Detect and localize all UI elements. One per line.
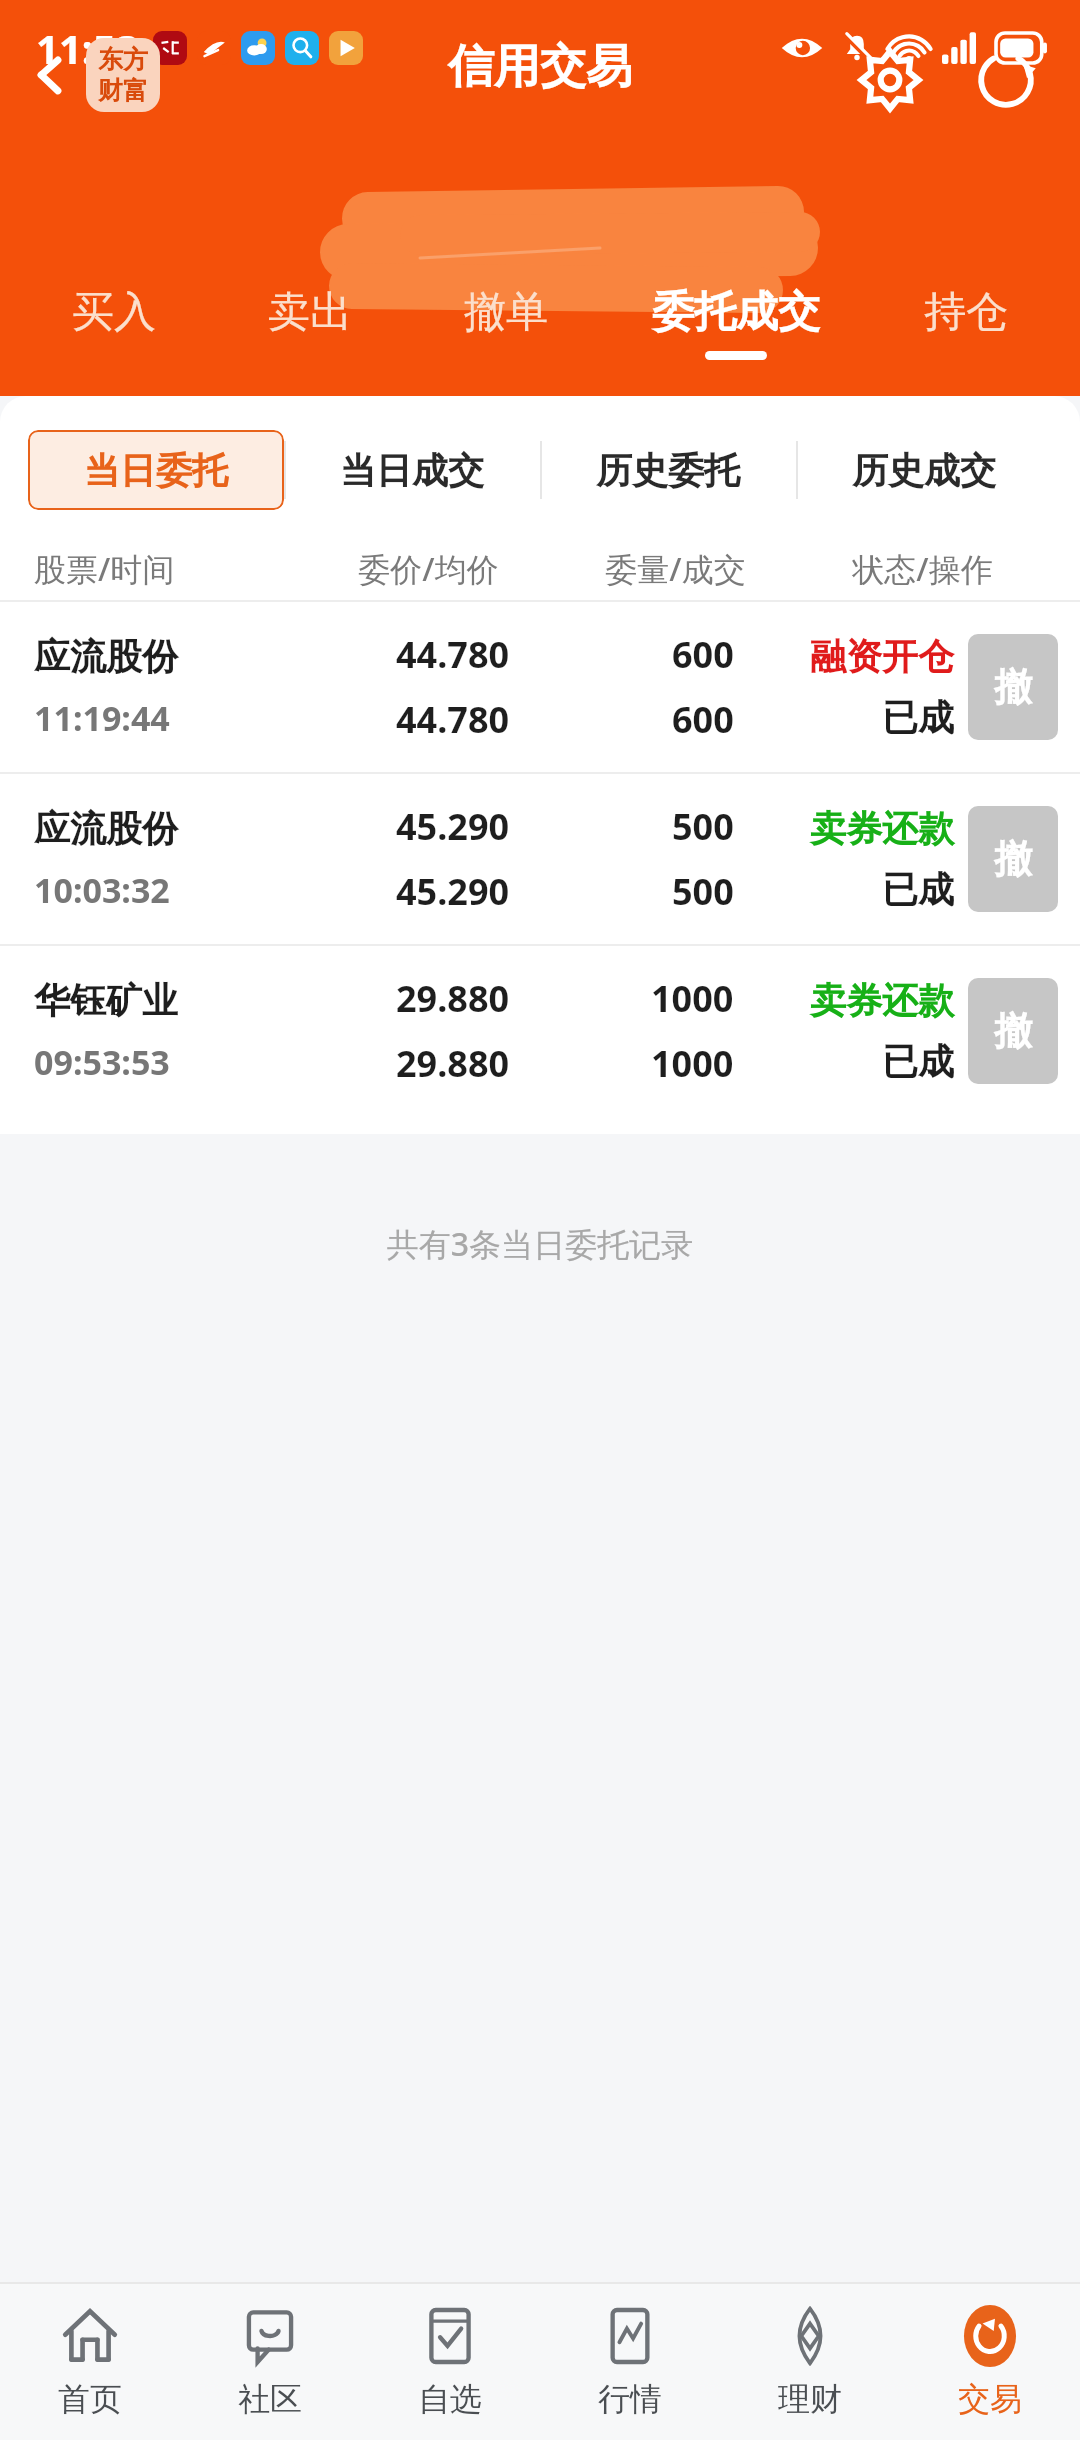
button[interactable]: 理财 (720, 2284, 900, 2440)
button[interactable]: 当日委托 (28, 430, 284, 510)
staticText: 500 (672, 802, 734, 851)
staticText: 10:03:32 (34, 867, 170, 913)
button[interactable]: 行情 (540, 2284, 720, 2440)
button[interactable]: 自选 (360, 2284, 540, 2440)
staticText: 44.780 (396, 695, 510, 744)
staticText: 行情 (598, 2379, 662, 2419)
staticText: 历史成交 (852, 448, 996, 493)
staticText: 持仓 (924, 286, 1008, 339)
staticText: 买入 (72, 286, 156, 339)
button[interactable]: 委托成交 (604, 286, 868, 396)
button[interactable]: Settings (850, 40, 930, 120)
staticText: 应流股份 (34, 806, 178, 851)
staticText: 45.290 (396, 802, 510, 851)
button[interactable]: 首页 (0, 2284, 180, 2440)
staticText: 卖券还款 (810, 978, 954, 1023)
staticText: 1000 (651, 974, 734, 1023)
staticText: 09:53:53 (34, 1039, 170, 1085)
button[interactable]: 社区 (180, 2284, 360, 2440)
staticText: 卖券还款 (810, 806, 954, 851)
staticText: 委量/成交 (552, 547, 799, 591)
staticText: 45.290 (396, 867, 510, 916)
button[interactable]: 撤 (968, 634, 1058, 740)
staticText: 已成 (882, 867, 954, 912)
button[interactable]: 撤 (968, 978, 1058, 1084)
button[interactable]: 持仓 (868, 286, 1064, 396)
staticText: 撤 (994, 835, 1032, 883)
staticText: 已成 (882, 1039, 954, 1084)
staticText: 历史委托 (596, 448, 740, 493)
staticText: 财富 (98, 75, 148, 106)
staticText: 融资开仓 (810, 634, 954, 679)
staticText: 11:19:44 (34, 695, 170, 741)
staticText: 撤 (994, 1007, 1032, 1055)
button[interactable]: Refresh (966, 40, 1046, 120)
staticText: 理财 (778, 2379, 842, 2419)
staticText: 首页 (58, 2379, 122, 2419)
button[interactable]: 应流股份 (0, 774, 1080, 944)
button[interactable]: 应流股份 (0, 602, 1080, 772)
staticText: 卖出 (268, 286, 352, 339)
button[interactable]: 撤 (968, 806, 1058, 912)
staticText: 东方 (98, 44, 148, 75)
staticText: 500 (672, 867, 734, 916)
staticText: 600 (672, 630, 734, 679)
staticText: 自选 (418, 2379, 482, 2419)
button[interactable]: 华钰矿业 (0, 946, 1080, 1116)
staticText: 撤 (994, 663, 1032, 711)
button[interactable]: 历史成交 (796, 430, 1052, 510)
staticText: 委价/均价 (305, 547, 552, 591)
button[interactable]: 东方 (86, 38, 160, 112)
staticText: 已成 (882, 695, 954, 740)
staticText: 44.780 (396, 630, 510, 679)
staticText: 11:53 (36, 21, 139, 75)
staticText: 当日委托 (84, 448, 228, 493)
button[interactable]: 当日成交 (284, 430, 540, 510)
staticText: 撤单 (464, 286, 548, 339)
staticText: 应流股份 (34, 634, 178, 679)
staticText: 信用交易 (448, 38, 632, 96)
staticText: 当日成交 (340, 448, 484, 493)
staticText: 状态/操作 (799, 547, 1046, 591)
staticText: 华钰矿业 (34, 978, 178, 1023)
staticText: 委托成交 (652, 286, 820, 339)
button[interactable]: 卖出 (212, 286, 408, 396)
staticText: 29.880 (396, 974, 510, 1023)
staticText: 共有3条当日委托记录 (0, 1222, 1080, 1266)
button[interactable]: 交易 (900, 2284, 1080, 2440)
staticText: 股票/时间 (34, 547, 305, 591)
button[interactable]: 历史委托 (540, 430, 796, 510)
staticText: 交易 (958, 2379, 1022, 2419)
staticText: 600 (672, 695, 734, 744)
staticText: 1000 (651, 1039, 734, 1088)
staticText: 29.880 (396, 1039, 510, 1088)
staticText: 社区 (238, 2379, 302, 2419)
button[interactable]: Back (14, 39, 86, 111)
button[interactable]: 撤单 (408, 286, 604, 396)
button[interactable]: 买入 (16, 286, 212, 396)
